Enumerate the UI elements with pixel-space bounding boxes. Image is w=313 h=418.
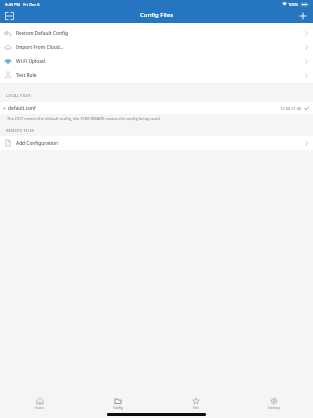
staticText: Home [35, 406, 44, 410]
staticText: default.conf [8, 105, 36, 112]
staticText: Settings [268, 406, 280, 410]
button[interactable]: Wi-Fi Upload [0, 54, 313, 68]
staticText: The DOT means the default config, the CH… [7, 116, 309, 121]
button[interactable]: Test Rule [0, 68, 313, 82]
staticText: Config [113, 406, 123, 410]
staticText: Wi-Fi Upload [16, 58, 45, 65]
button[interactable]: Add [297, 10, 309, 22]
button[interactable]: Home [0, 390, 79, 411]
button[interactable]: default.conf [0, 102, 313, 114]
button[interactable]: Import From Cloud... [0, 40, 313, 54]
staticText: 12-06 21:40 [280, 106, 302, 111]
button[interactable]: Star [157, 390, 235, 411]
button[interactable]: Scan code [3, 10, 15, 22]
staticText: REMOTE FILES [6, 128, 35, 133]
button[interactable]: Add Configuration [0, 136, 313, 150]
staticText: Add Configuration [16, 140, 59, 147]
button[interactable]: Settings [235, 390, 313, 411]
staticText: Test Rule [16, 72, 37, 79]
staticText: Star [193, 406, 199, 410]
staticText: LOCAL FILES [6, 93, 31, 98]
staticText: Import From Cloud... [16, 44, 64, 51]
button[interactable]: Config [79, 390, 157, 411]
staticText: Restore Default Config [16, 30, 68, 37]
button[interactable]: Restore Default Config [0, 26, 313, 40]
staticText: 9:45 PM Fri Dec 6 [5, 2, 40, 7]
staticText: 100% [288, 2, 299, 7]
staticText: Config Files [140, 11, 174, 19]
